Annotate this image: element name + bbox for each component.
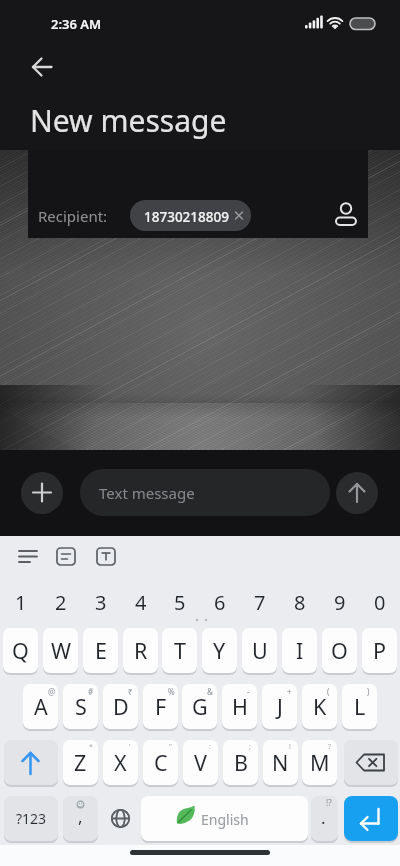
button[interactable] <box>311 796 338 841</box>
staticText: ? <box>328 742 332 752</box>
staticText: I <box>296 636 304 665</box>
staticText: * <box>89 742 93 752</box>
button[interactable] <box>141 796 308 841</box>
button[interactable]: 7 <box>242 584 277 620</box>
staticText: English <box>201 810 249 829</box>
staticText: 8 <box>294 589 306 616</box>
button[interactable] <box>14 542 44 572</box>
staticText: B <box>234 748 248 777</box>
button[interactable]: U <box>242 628 277 673</box>
button[interactable]: 1 <box>3 584 38 620</box>
staticText: 6 <box>214 589 226 616</box>
staticText: F <box>155 692 167 721</box>
staticText: J <box>277 692 283 721</box>
staticText: Z <box>74 748 87 777</box>
button[interactable]: L <box>342 684 377 729</box>
staticText: 1 <box>15 589 27 616</box>
button[interactable]: Z <box>63 740 98 785</box>
button[interactable]: 8 <box>282 584 317 620</box>
button[interactable] <box>63 796 98 841</box>
button[interactable]: R <box>123 628 158 673</box>
button[interactable]: 3 <box>83 584 118 620</box>
button[interactable]: P <box>362 628 397 673</box>
staticText: ( <box>327 686 330 697</box>
button[interactable]: W <box>43 628 78 673</box>
button[interactable]: S <box>63 684 98 729</box>
staticText: 2:36 AM <box>51 15 102 33</box>
button[interactable] <box>80 469 330 516</box>
button[interactable] <box>344 796 398 841</box>
button[interactable] <box>92 542 122 572</box>
staticText: Recipient: <box>38 206 108 226</box>
staticText: ₹ <box>128 686 133 697</box>
button[interactable]: I <box>282 628 317 673</box>
staticText: Q <box>12 636 29 665</box>
button[interactable]: 6 <box>202 584 237 620</box>
staticText: + <box>287 686 292 697</box>
button[interactable] <box>52 542 82 572</box>
button[interactable]: ?123 <box>4 796 58 841</box>
staticText: X <box>114 748 127 777</box>
button[interactable] <box>336 472 378 514</box>
button[interactable]: H <box>222 684 257 729</box>
button[interactable] <box>130 200 251 231</box>
staticText: 18730218809 <box>144 208 229 226</box>
staticText: S <box>75 692 87 721</box>
staticText: Text message <box>99 483 195 503</box>
button[interactable]: N <box>263 740 298 785</box>
staticText: @ <box>48 686 56 697</box>
button[interactable]: J <box>262 684 297 729</box>
staticText: E <box>95 636 107 665</box>
staticText: , <box>78 805 83 828</box>
button[interactable] <box>330 196 362 228</box>
staticText: ?123 <box>16 809 47 828</box>
button[interactable]: 5 <box>162 584 197 620</box>
button[interactable] <box>105 803 136 834</box>
button[interactable]: C <box>143 740 178 785</box>
button[interactable]: O <box>322 628 357 673</box>
button[interactable]: Y <box>202 628 237 673</box>
staticText: - <box>247 686 250 697</box>
button[interactable]: 4 <box>123 584 158 620</box>
staticText: : <box>209 742 211 752</box>
staticText: 4 <box>135 589 147 616</box>
button[interactable] <box>26 51 58 83</box>
button[interactable] <box>4 740 58 785</box>
button[interactable]: V <box>183 740 218 785</box>
staticText: ; <box>249 742 251 752</box>
button[interactable]: X <box>103 740 138 785</box>
staticText: G <box>192 692 208 721</box>
staticText: & <box>207 686 213 697</box>
button[interactable]: T <box>162 628 197 673</box>
button[interactable]: G <box>182 684 217 729</box>
staticText: 9 <box>334 589 346 616</box>
staticText: D <box>113 692 129 721</box>
staticText: L <box>354 692 366 721</box>
button[interactable]: 2 <box>43 584 78 620</box>
button[interactable] <box>344 740 398 785</box>
button[interactable]: F <box>143 684 178 729</box>
staticText: T <box>174 636 186 665</box>
staticText: P <box>373 636 387 665</box>
button[interactable]: A <box>23 684 58 729</box>
button[interactable]: E <box>83 628 118 673</box>
staticText: . <box>321 806 326 829</box>
button[interactable]: D <box>103 684 138 729</box>
staticText: 5 <box>174 589 186 616</box>
button[interactable]: M <box>302 740 337 785</box>
button[interactable] <box>21 472 63 514</box>
staticText: U <box>252 636 268 665</box>
staticText: M <box>310 748 330 777</box>
button[interactable]: K <box>302 684 337 729</box>
button[interactable]: B <box>223 740 258 785</box>
staticText: Y <box>213 636 226 665</box>
button[interactable]: 9 <box>322 584 357 620</box>
staticText: R <box>134 636 148 665</box>
staticText: % <box>168 686 175 697</box>
staticText: N <box>272 748 289 777</box>
button[interactable]: New message <box>30 100 227 141</box>
staticText: V <box>194 748 207 777</box>
button[interactable]: Q <box>3 628 38 673</box>
staticText: 0 <box>374 589 386 616</box>
button[interactable]: 0 <box>362 584 397 620</box>
